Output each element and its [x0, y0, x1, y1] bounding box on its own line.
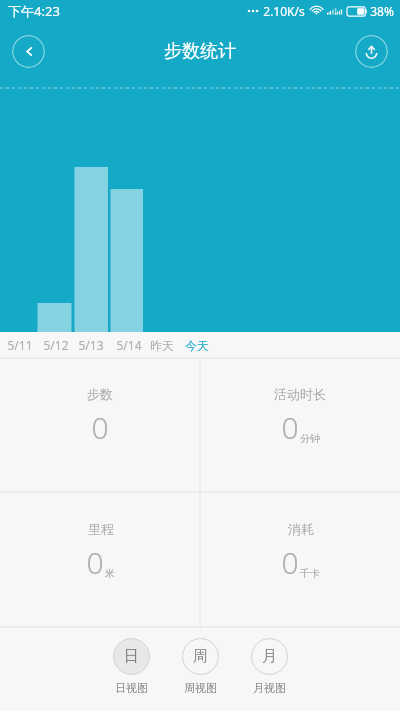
staticText: 步数 [87, 386, 113, 402]
staticText: 0 [86, 542, 104, 583]
staticText: 5/14 [116, 337, 142, 353]
staticText: 里程 [88, 521, 114, 537]
button[interactable]: 日 [109, 638, 154, 695]
staticText: 米 [105, 567, 115, 580]
staticText: 0 [281, 542, 299, 583]
button[interactable]: 里程 [0, 492, 200, 628]
button[interactable]: 月 [247, 638, 292, 695]
staticText: 2.10K/s [263, 3, 305, 19]
button[interactable]: 消耗 [200, 492, 400, 628]
staticText: 0 [91, 407, 109, 448]
staticText: 活动时长 [274, 386, 326, 402]
button[interactable]: 步数 [0, 358, 200, 492]
staticText: 下午4:23 [8, 2, 60, 20]
staticText: 分钟 [300, 432, 320, 445]
staticText: 周 [193, 647, 208, 666]
staticText: 5/12 [43, 337, 69, 353]
staticText: 5/13 [78, 337, 104, 353]
staticText: 0 [281, 407, 299, 448]
button[interactable]: 活动时长 [200, 358, 400, 492]
staticText: 月 [262, 647, 277, 666]
staticText: 周视图 [184, 681, 217, 695]
staticText: 今天 [185, 338, 209, 353]
button[interactable]: Share [355, 35, 388, 68]
staticText: 昨天 [150, 338, 174, 353]
staticText: 消耗 [288, 521, 314, 537]
staticText: 日视图 [115, 681, 148, 695]
staticText: 千卡 [300, 567, 320, 580]
staticText: 月视图 [253, 681, 286, 695]
staticText: 步数统计 [164, 40, 236, 63]
staticText: 38% [370, 3, 394, 19]
staticText: 日 [124, 647, 139, 666]
button[interactable]: Back [12, 35, 45, 68]
button[interactable]: 周 [178, 638, 223, 695]
staticText: 5/11 [7, 337, 33, 353]
